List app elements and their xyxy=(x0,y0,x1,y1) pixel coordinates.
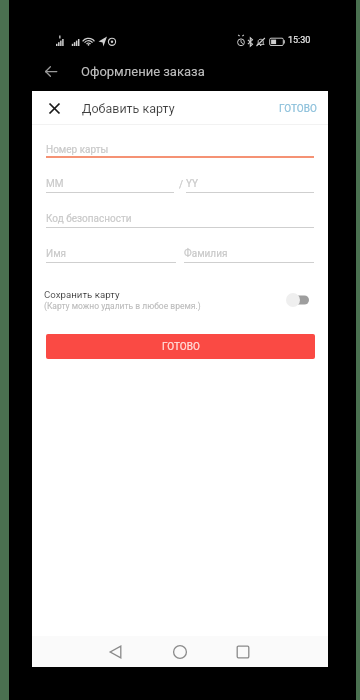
staticText: Фамилия xyxy=(184,248,228,260)
staticText: YY xyxy=(186,178,199,190)
staticText: Оформление заказа xyxy=(81,64,205,79)
staticText: / xyxy=(179,179,184,191)
button[interactable]: Back xyxy=(100,636,132,667)
staticText: MM xyxy=(46,178,64,190)
button[interactable]: ГОТОВО xyxy=(46,334,315,359)
button[interactable]: Фамилия xyxy=(184,248,314,270)
button[interactable]: Back xyxy=(38,58,64,84)
staticText: ГОТОВО xyxy=(162,341,200,353)
button[interactable]: ГОТОВО xyxy=(273,92,327,126)
staticText: Код безопасности xyxy=(46,213,132,225)
button[interactable]: YY xyxy=(186,178,314,200)
button[interactable]: Код безопасности xyxy=(46,213,314,235)
staticText: Имя xyxy=(46,248,67,260)
button[interactable]: Home xyxy=(164,636,196,667)
button[interactable]: Recent apps xyxy=(227,636,259,667)
button[interactable]: Сохранить карту xyxy=(40,286,320,314)
staticText: Добавить карту xyxy=(82,101,175,116)
staticText: ГОТОВО xyxy=(279,103,317,115)
staticText: 15:30 xyxy=(288,35,311,46)
staticText: Сохранить карту xyxy=(44,289,120,300)
button[interactable]: Close xyxy=(42,96,66,120)
button[interactable]: MM xyxy=(46,178,174,200)
staticText: Номер карты xyxy=(46,144,109,156)
button[interactable]: Имя xyxy=(46,248,176,270)
button[interactable]: Номер карты xyxy=(46,144,314,166)
staticText: (Карту можно удалить в любое время.) xyxy=(44,301,201,311)
